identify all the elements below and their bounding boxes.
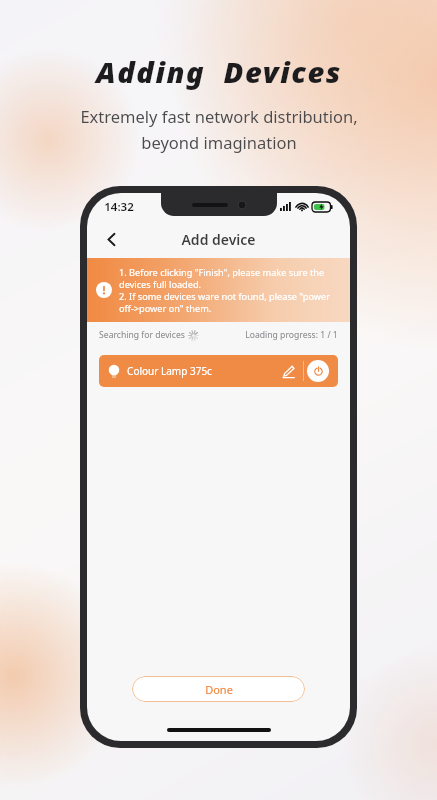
- staticText: Loading progress: 1 / 1: [245, 329, 338, 341]
- staticText: beyond imagination: [141, 131, 297, 153]
- staticText: Extremely fast network distribution,: [80, 105, 358, 127]
- staticText: 14:32: [104, 199, 134, 215]
- staticText: 2. If some devices ware not found, pleas…: [119, 290, 340, 314]
- button[interactable]: Power toggle: [307, 360, 329, 382]
- staticText: Done: [205, 682, 233, 697]
- staticText: Colour Lamp 375c: [127, 364, 212, 378]
- staticText: 1. Before clicking "Finish", please make…: [119, 266, 340, 290]
- button[interactable]: Back: [93, 221, 129, 257]
- button[interactable]: Rename device: [276, 358, 300, 384]
- staticText: Add device: [181, 230, 256, 249]
- button[interactable]: Done: [132, 676, 305, 702]
- staticText: Searching for devices: [99, 329, 185, 341]
- button[interactable]: Colour Lamp 375c: [99, 355, 338, 387]
- staticText: Adding Devices: [96, 52, 342, 91]
